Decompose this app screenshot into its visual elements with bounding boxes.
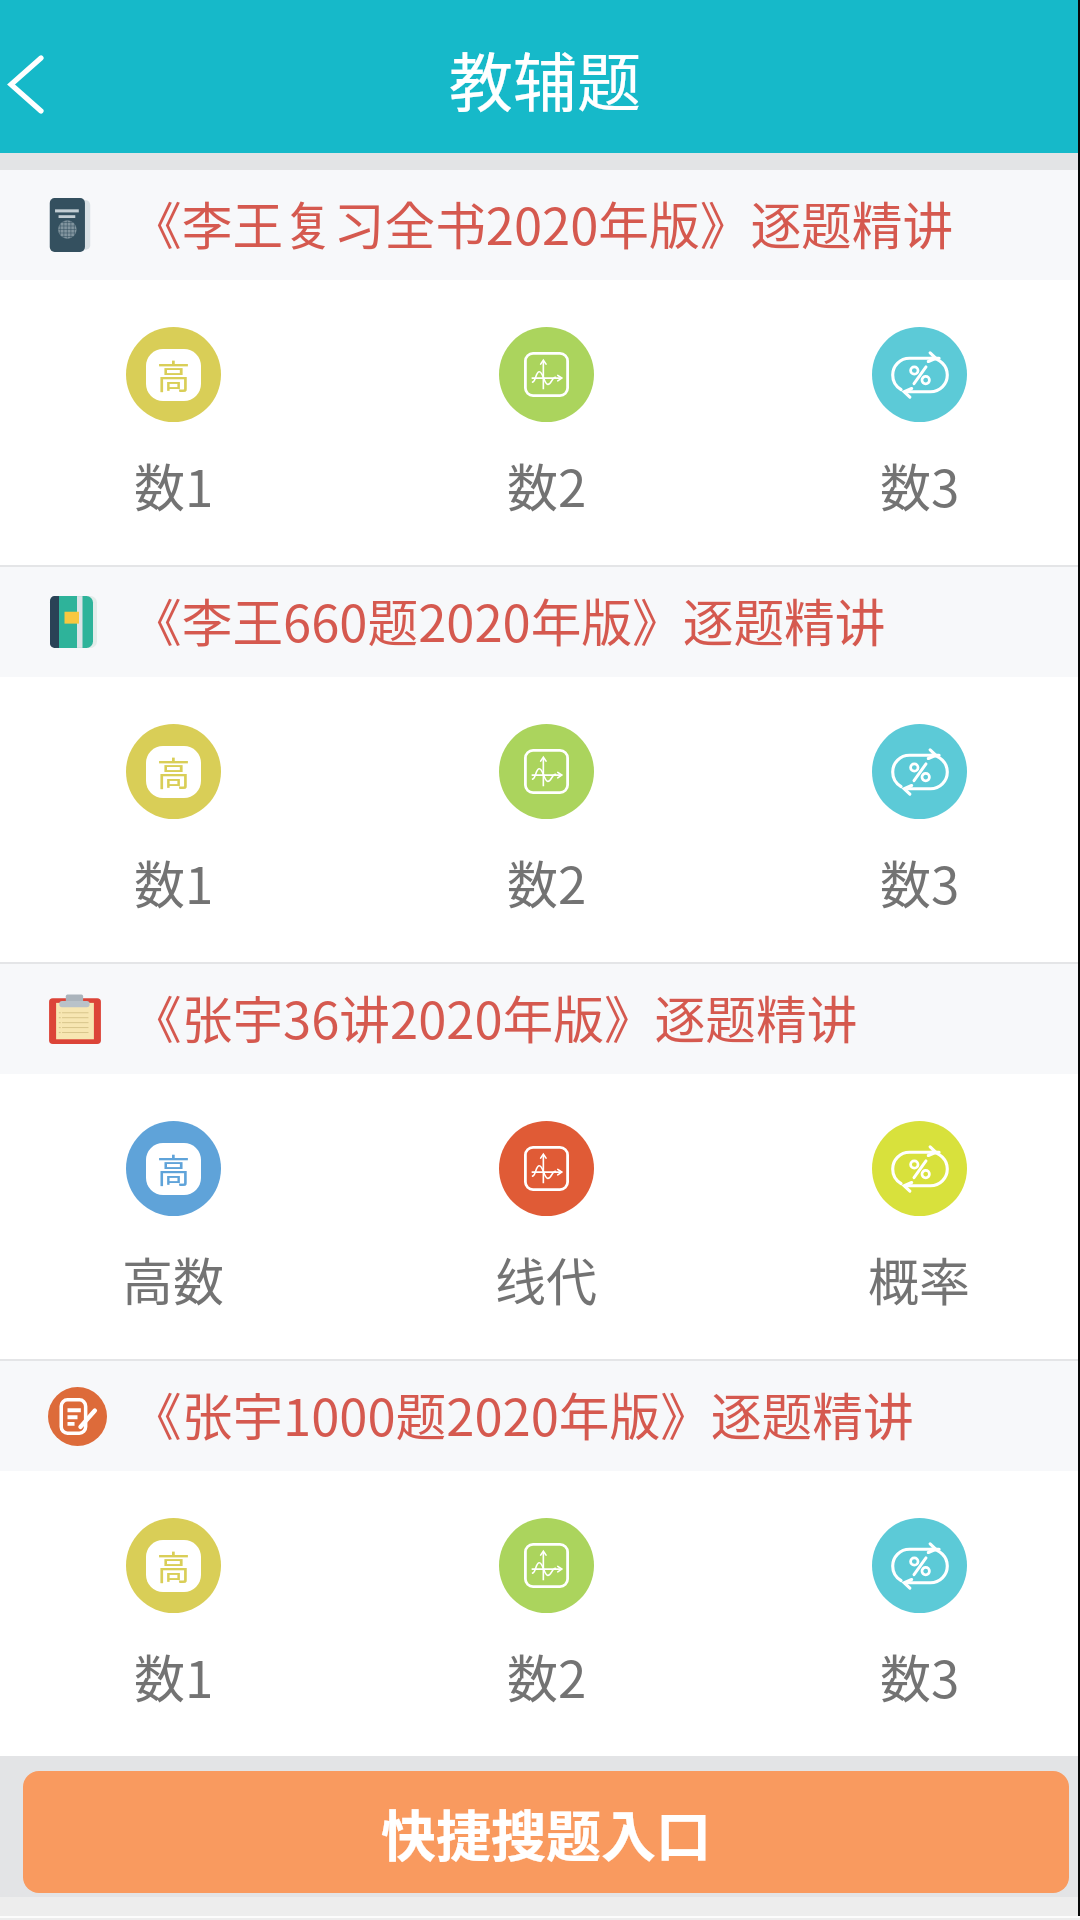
button[interactable]: 概率: [770, 1074, 1069, 1359]
button[interactable]: 数2: [397, 677, 696, 962]
staticText: 高: [157, 748, 190, 796]
staticText: 《张宇1000题2020年版》逐题精讲: [131, 1377, 914, 1450]
staticText: 数3: [880, 845, 960, 919]
button[interactable]: 数2: [397, 1471, 696, 1756]
button[interactable]: 数2: [397, 280, 696, 565]
staticText: 数1: [134, 1639, 214, 1713]
button[interactable]: Back: [0, 0, 110, 153]
button[interactable]: 《张宇1000题2020年版》逐题精讲: [0, 1361, 1080, 1471]
staticText: 《张宇36讲2020年版》逐题精讲: [131, 980, 858, 1053]
staticText: 高: [157, 1145, 190, 1193]
button[interactable]: 数3: [770, 1471, 1069, 1756]
button[interactable]: 线代: [397, 1074, 696, 1359]
button[interactable]: 数3: [770, 677, 1069, 962]
staticText: 数3: [880, 448, 960, 522]
button[interactable]: 《李王660题2020年版》逐题精讲: [0, 567, 1080, 677]
button[interactable]: 数3: [770, 280, 1069, 565]
button[interactable]: 《李王复习全书2020年版》逐题精讲: [0, 170, 1080, 280]
staticText: 数1: [134, 845, 214, 919]
button[interactable]: 高: [24, 677, 323, 962]
button[interactable]: 高: [24, 1074, 323, 1359]
staticText: 《李王660题2020年版》逐题精讲: [131, 583, 886, 656]
staticText: 数2: [507, 448, 587, 522]
staticText: 《李王复习全书2020年版》逐题精讲: [131, 186, 954, 259]
button[interactable]: 《张宇36讲2020年版》逐题精讲: [0, 964, 1080, 1074]
staticText: 数2: [507, 845, 587, 919]
staticText: 高数: [122, 1242, 225, 1316]
staticText: 数1: [134, 448, 214, 522]
button[interactable]: 快捷搜题入口: [23, 1771, 1069, 1893]
button[interactable]: 高: [24, 280, 323, 565]
button[interactable]: 高: [24, 1471, 323, 1756]
staticText: 高: [157, 351, 190, 399]
staticText: 概率: [868, 1242, 971, 1316]
staticText: 数3: [880, 1639, 960, 1713]
staticText: 高: [157, 1542, 190, 1590]
staticText: 快捷搜题入口: [381, 1792, 712, 1872]
staticText: 教辅题: [449, 32, 641, 125]
staticText: 线代: [495, 1242, 598, 1316]
staticText: 数2: [507, 1639, 587, 1713]
